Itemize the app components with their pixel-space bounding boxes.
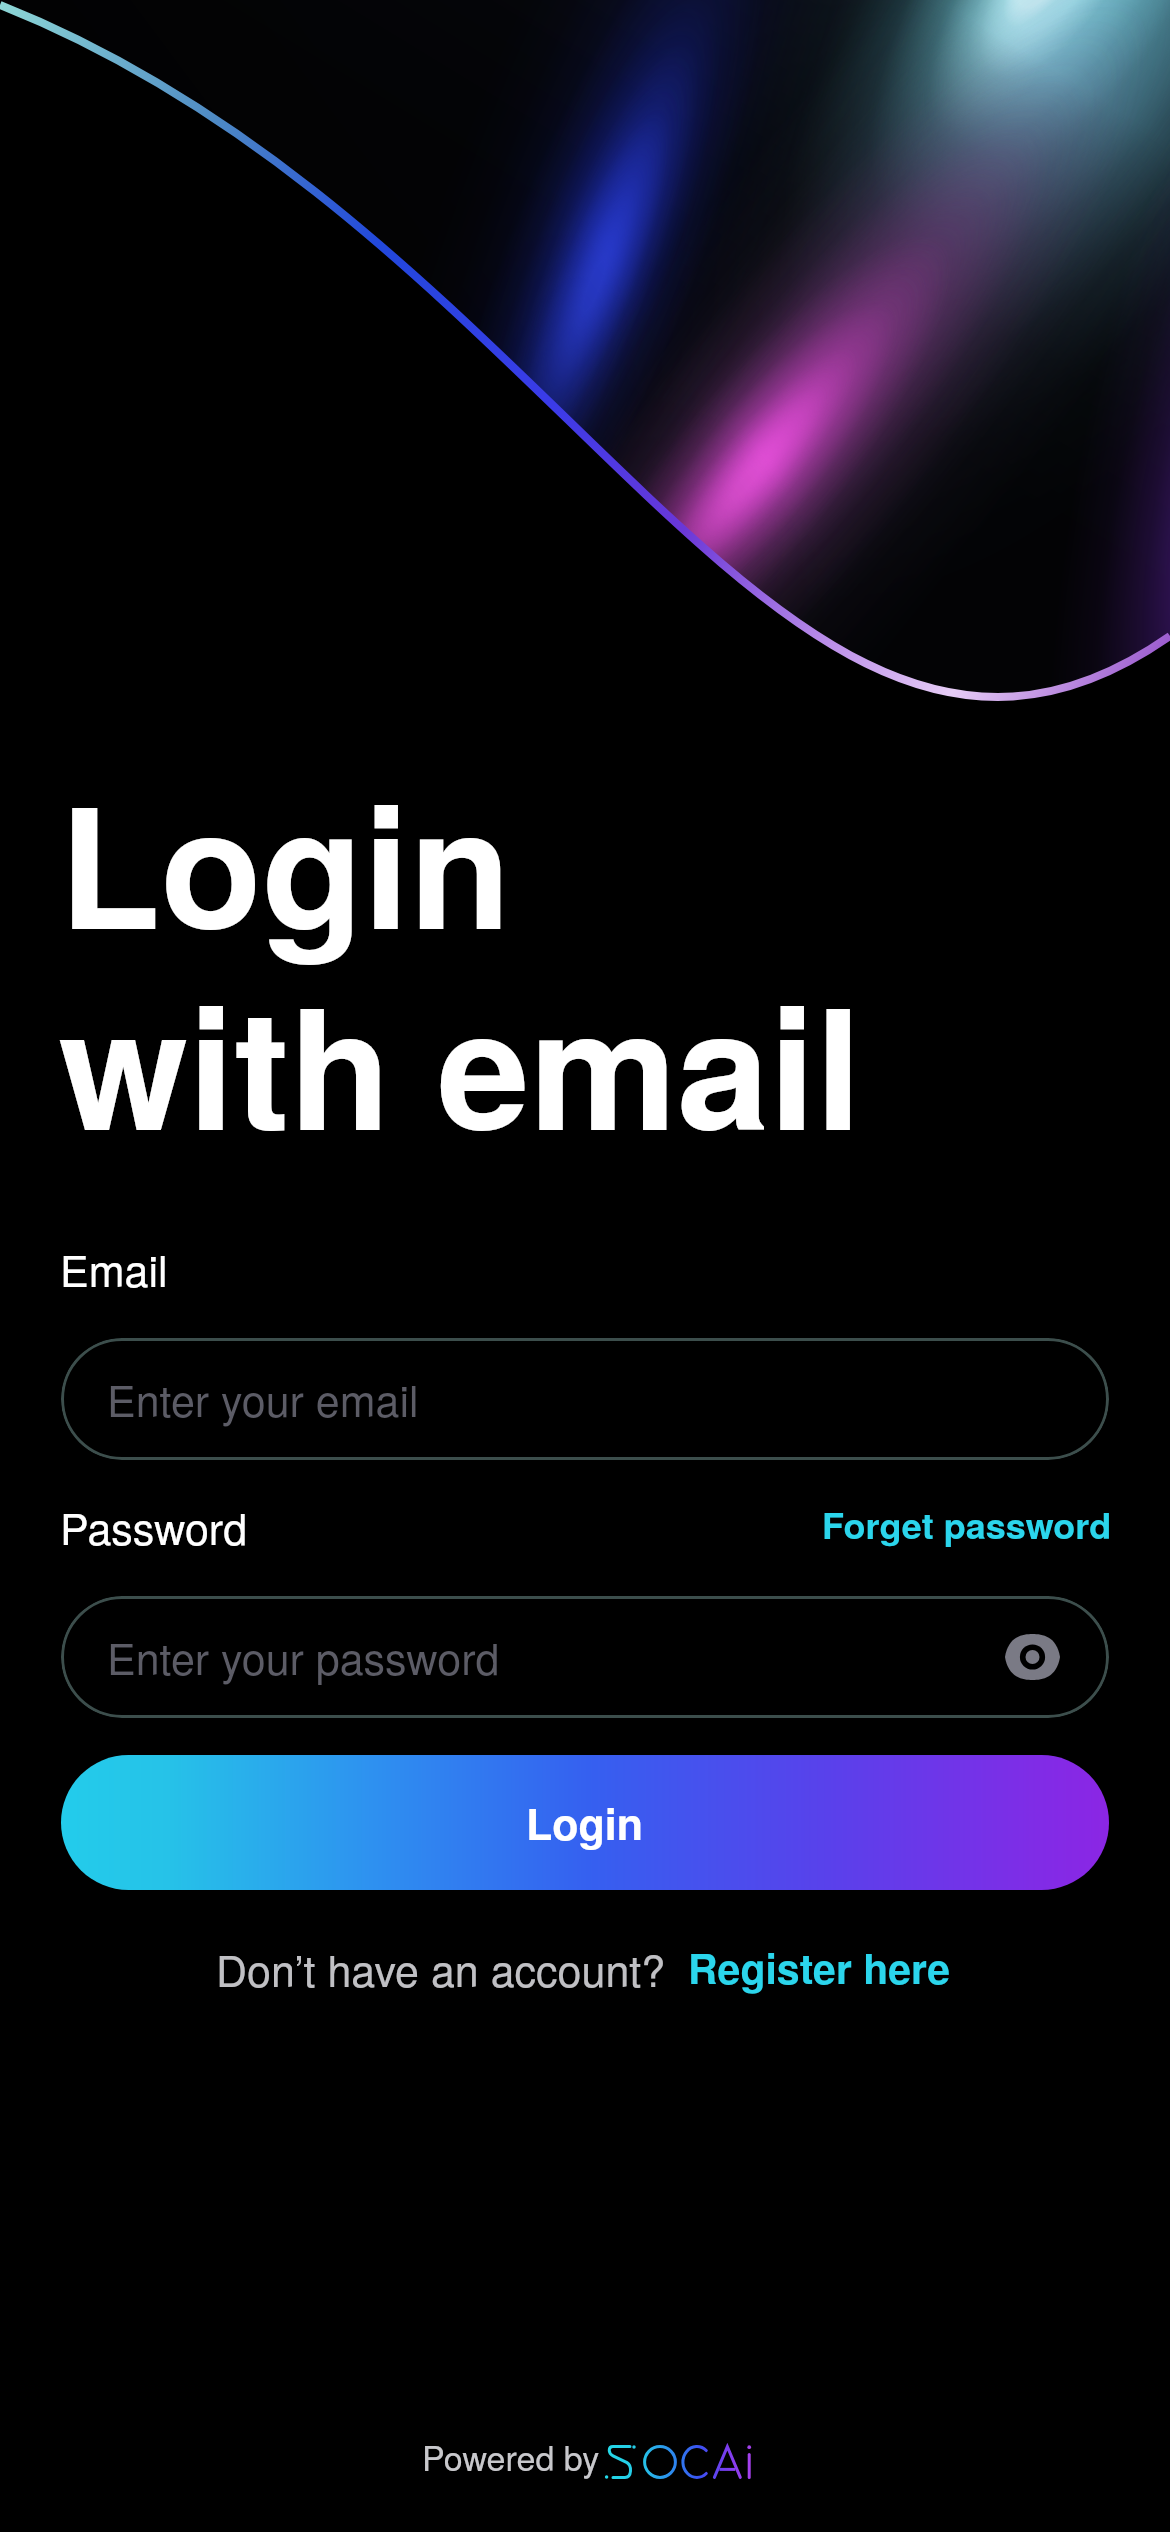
staticText: Don’t have an account? [216, 1938, 666, 2000]
staticText: Password [60, 1496, 248, 1558]
button[interactable]: Show password [995, 1620, 1069, 1694]
staticText: Login [526, 1792, 644, 1854]
staticText: Email [60, 1238, 168, 1300]
button[interactable]: Register here [678, 1932, 961, 2003]
staticText: Enter your email [107, 1368, 419, 1430]
button[interactable]: Login [61, 1755, 1109, 1890]
button[interactable]: Enter your password [61, 1596, 1109, 1718]
staticText: Enter your password [107, 1626, 500, 1688]
staticText: Login with email [59, 742, 862, 1181]
button[interactable]: Enter your email [61, 1338, 1109, 1460]
staticText: Register here [688, 1938, 951, 1997]
button[interactable]: Forget password [812, 1492, 1122, 1556]
staticText: Forget password [822, 1498, 1112, 1550]
staticText: Powered by [422, 2432, 600, 2481]
